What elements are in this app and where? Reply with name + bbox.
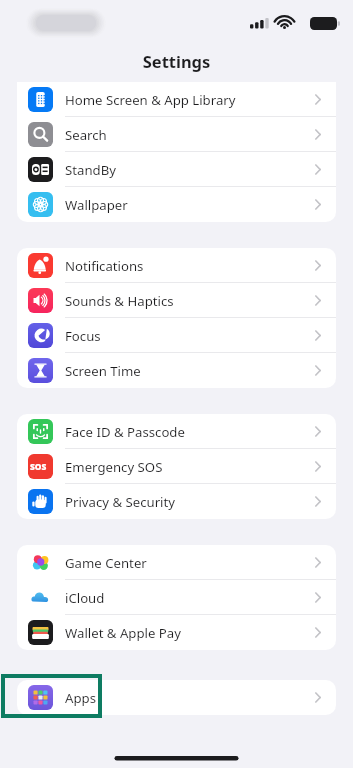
staticText: Wallet & Apple Pay [65, 624, 181, 642]
staticText: Face ID & Passcode [65, 423, 185, 441]
other: Home indicator [0, 744, 353, 768]
staticText: Emergency SOS [65, 458, 163, 476]
staticText: Wallpaper [65, 196, 128, 214]
button[interactable]: SOS [17, 449, 336, 484]
staticText: Screen Time [65, 362, 141, 380]
button[interactable]: Screen Time [17, 353, 336, 388]
staticText: Notifications [65, 257, 144, 275]
staticText: Apps [65, 689, 96, 707]
button[interactable]: Game Center [17, 545, 336, 580]
button[interactable]: Wallet & Apple Pay [17, 615, 336, 650]
button[interactable]: Wallpaper [17, 187, 336, 222]
button[interactable]: Home Screen & App Library [17, 82, 336, 117]
button[interactable]: Search [17, 117, 336, 152]
button[interactable]: Apps [17, 680, 336, 715]
staticText: iCloud [65, 589, 105, 607]
staticText: Settings [0, 50, 353, 72]
button[interactable]: Focus [17, 318, 336, 353]
button[interactable]: Notifications [17, 248, 336, 283]
staticText: Sounds & Haptics [65, 292, 174, 310]
staticText: StandBy [65, 161, 116, 179]
staticText: Privacy & Security [65, 493, 175, 511]
button[interactable]: StandBy [17, 152, 336, 187]
button[interactable]: Face ID & Passcode [17, 414, 336, 449]
staticText: Search [65, 126, 107, 144]
staticText: SOS [30, 461, 47, 472]
staticText: Focus [65, 327, 101, 345]
button[interactable]: Privacy & Security [17, 484, 336, 519]
button[interactable]: iCloud [17, 580, 336, 615]
staticText: Home Screen & App Library [65, 91, 236, 109]
button[interactable]: Sounds & Haptics [17, 283, 336, 318]
staticText: Game Center [65, 554, 147, 572]
